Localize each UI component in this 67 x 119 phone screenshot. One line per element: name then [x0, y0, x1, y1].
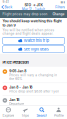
staticText: You will be notified when prices change … [2, 28, 54, 36]
staticText: 9:05 Jan 8 [9, 69, 26, 73]
button[interactable]: 9:05 Jan 8 [0, 67, 67, 83]
staticText: Filters [55, 5, 65, 9]
button[interactable]: Jan 18 [0, 96, 67, 108]
staticText: ▮▮ ▮ [60, 0, 64, 3]
staticText: Prices will vary a changing in the 60% [9, 73, 57, 81]
button[interactable]: Trips [17, 107, 34, 118]
staticText: Explore [2, 113, 14, 118]
staticText: Trips [21, 113, 29, 118]
staticText: Price drop alert $838 after 1 yen [9, 89, 59, 93]
staticText: Profile [54, 113, 64, 118]
staticText: SFO → JFK [24, 3, 42, 7]
button[interactable]: Search [33, 107, 50, 118]
button[interactable]: Filters [51, 4, 67, 10]
staticText: Watch this trip [24, 38, 49, 43]
staticText: Search [36, 113, 47, 118]
button[interactable]: Watch this trip [2, 37, 65, 44]
staticText: 9:41 [3, 0, 9, 4]
staticText: Back [4, 5, 12, 9]
staticText: Jan 8 - Jan 18 [9, 85, 32, 89]
button[interactable]: Change [52, 12, 64, 16]
staticText: Jan 18 [9, 98, 19, 102]
button[interactable]: Jan 8 - Jan 18 [0, 83, 67, 95]
staticText: You should keep watching this flight to … [2, 19, 61, 27]
staticText: See flight deals [24, 47, 49, 52]
staticText: Departure [9, 102, 24, 106]
button[interactable]: See flight deals [2, 46, 65, 53]
staticText: Price Prediction [2, 60, 28, 65]
button[interactable]: Back [0, 4, 16, 10]
button[interactable]: Explore [0, 107, 17, 118]
staticText: Mar 12 · 1 adult [22, 7, 45, 11]
staticText: Change [52, 12, 64, 16]
button[interactable]: Profile [50, 107, 67, 118]
staticText: Flight prices may drop soon [3, 12, 48, 16]
